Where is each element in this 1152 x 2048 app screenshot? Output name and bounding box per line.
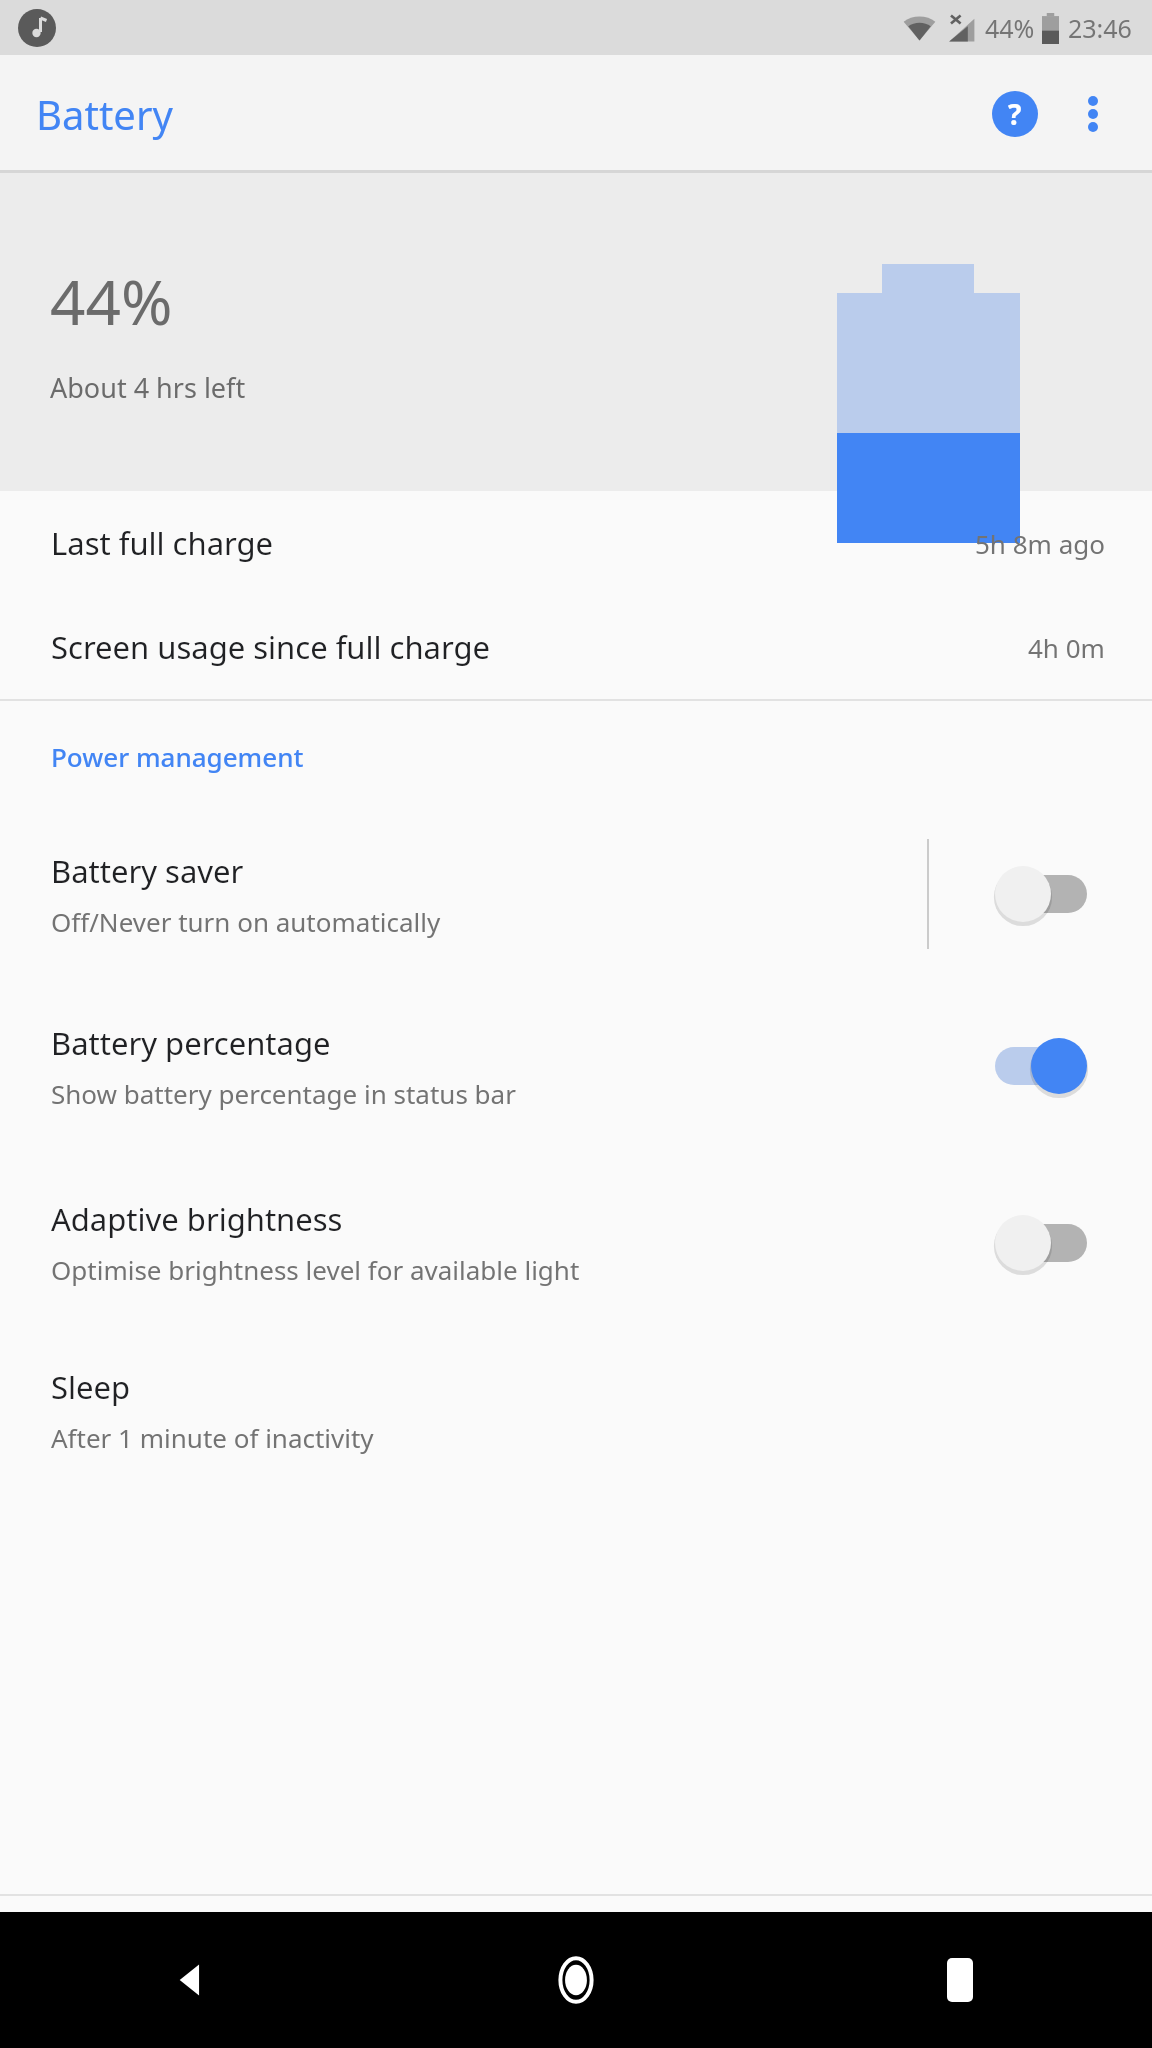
staticText: ? xyxy=(1008,95,1022,133)
button[interactable]: Battery percentage xyxy=(0,977,1152,1155)
staticText: 4h 0m xyxy=(1028,630,1105,665)
staticText: About 4 hrs left xyxy=(50,369,246,406)
staticText: Last full charge xyxy=(51,522,274,564)
staticText: 23:46 xyxy=(1068,11,1132,45)
staticText: Optimise brightness level for available … xyxy=(51,1252,580,1287)
button[interactable]: Battery saver switch xyxy=(986,859,1096,929)
button[interactable]: Last full charge xyxy=(0,491,1152,595)
staticText: 44% xyxy=(50,259,173,343)
staticText: Battery percentage xyxy=(51,1022,331,1064)
button[interactable]: Sleep xyxy=(0,1330,1152,1490)
button[interactable]: Back xyxy=(0,1912,384,2048)
staticText: Adaptive brightness xyxy=(51,1198,343,1240)
staticText: Power management xyxy=(51,739,304,774)
button[interactable]: Home xyxy=(384,1912,768,2048)
button[interactable]: Adaptive brightness xyxy=(0,1155,1152,1330)
button[interactable]: More options xyxy=(1054,75,1132,153)
button[interactable]: Recent apps xyxy=(768,1912,1152,2048)
staticText: Battery xyxy=(36,87,173,141)
button[interactable]: Help xyxy=(976,75,1054,153)
staticText: Screen usage since full charge xyxy=(51,626,491,668)
staticText: Show battery percentage in status bar xyxy=(51,1076,516,1111)
button[interactable]: Adaptive brightness switch xyxy=(986,1208,1096,1278)
button[interactable]: Battery xyxy=(20,75,189,153)
staticText: Off/Never turn on automatically xyxy=(51,904,441,939)
staticText: 44% xyxy=(985,11,1035,45)
staticText: 5h 8m ago xyxy=(975,526,1105,561)
staticText: Battery saver xyxy=(51,850,244,892)
button[interactable]: Screen usage since full charge xyxy=(0,595,1152,699)
button[interactable]: Battery saver xyxy=(0,811,1152,977)
staticText: After 1 minute of inactivity xyxy=(51,1420,374,1455)
button[interactable]: Battery percentage switch xyxy=(986,1031,1096,1101)
staticText: Sleep xyxy=(51,1366,131,1408)
